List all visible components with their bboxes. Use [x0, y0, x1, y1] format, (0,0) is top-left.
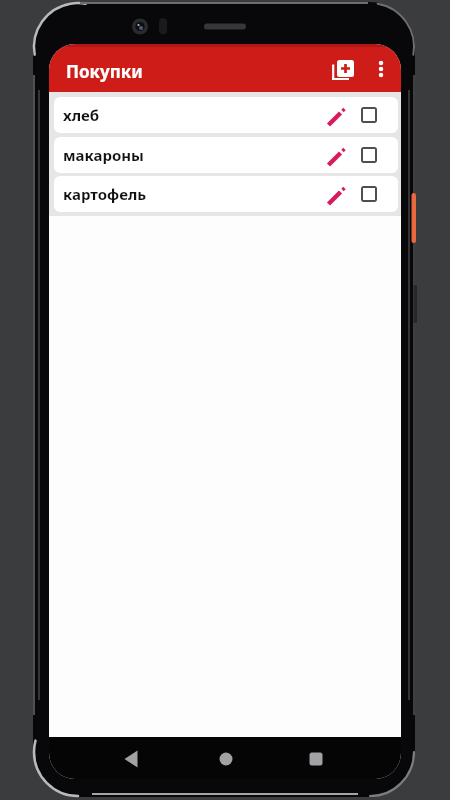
button[interactable]	[361, 107, 377, 123]
staticText: картофель	[63, 184, 147, 204]
button[interactable]	[330, 57, 356, 83]
button[interactable]: картофель	[54, 176, 398, 212]
button[interactable]	[369, 57, 393, 81]
button[interactable]	[326, 185, 348, 207]
button[interactable]: хлеб	[54, 97, 398, 133]
button[interactable]	[301, 744, 331, 774]
button[interactable]	[118, 744, 148, 774]
button[interactable]	[326, 106, 348, 128]
button[interactable]	[326, 146, 348, 168]
button[interactable]: макароны	[54, 137, 398, 173]
button[interactable]	[361, 186, 377, 202]
button[interactable]	[211, 744, 241, 774]
staticText: макароны	[63, 145, 144, 165]
button[interactable]	[361, 147, 377, 163]
staticText: хлеб	[63, 105, 100, 125]
staticText: Покупки	[66, 60, 143, 83]
